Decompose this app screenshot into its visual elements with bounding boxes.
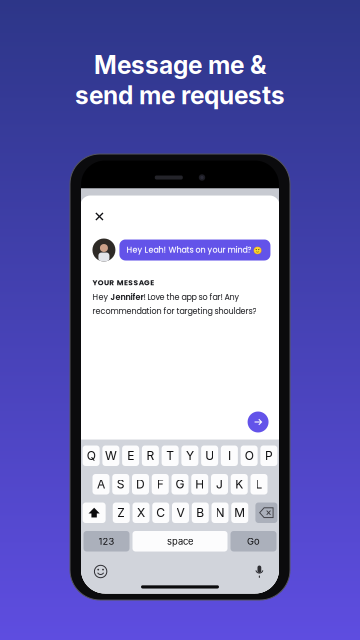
button[interactable]: E bbox=[122, 445, 139, 466]
staticText: U bbox=[205, 448, 214, 463]
staticText: send me requests bbox=[75, 80, 285, 110]
staticText: Go bbox=[247, 536, 260, 547]
staticText: 🙂 bbox=[253, 246, 262, 254]
button[interactable]: T bbox=[162, 445, 179, 466]
button[interactable]: Shift bbox=[83, 502, 106, 523]
button[interactable]: S bbox=[112, 474, 129, 494]
button[interactable]: F bbox=[152, 474, 169, 494]
button[interactable]: X bbox=[132, 502, 149, 523]
staticText: Hey Leah! Whats on your mind? bbox=[126, 244, 251, 256]
button[interactable]: space bbox=[132, 531, 227, 551]
button[interactable]: C bbox=[152, 502, 169, 523]
staticText: Y bbox=[186, 448, 194, 463]
button[interactable]: W bbox=[102, 445, 119, 466]
button[interactable]: P bbox=[260, 445, 277, 466]
button[interactable]: V bbox=[172, 502, 189, 523]
button[interactable]: Send message bbox=[248, 411, 269, 432]
button[interactable]: H bbox=[191, 474, 208, 494]
staticText: R bbox=[146, 448, 154, 463]
button[interactable]: U bbox=[201, 445, 218, 466]
button[interactable]: L bbox=[250, 474, 267, 494]
staticText: J bbox=[216, 477, 223, 491]
button[interactable]: D bbox=[132, 474, 149, 494]
staticText: Q bbox=[87, 448, 96, 463]
button[interactable]: Z bbox=[113, 502, 130, 523]
button[interactable]: O bbox=[241, 445, 258, 466]
staticText: A bbox=[97, 477, 105, 491]
staticText: space bbox=[167, 536, 193, 547]
staticText: S bbox=[117, 477, 125, 491]
button[interactable]: J bbox=[211, 474, 228, 494]
staticText: O bbox=[245, 448, 254, 463]
button[interactable]: Dictation bbox=[252, 564, 266, 578]
staticText: YOUR MESSAGE bbox=[92, 277, 154, 288]
staticText: B bbox=[196, 505, 204, 520]
staticText: H bbox=[195, 477, 204, 491]
staticText: X bbox=[137, 505, 145, 520]
button[interactable]: Close bbox=[88, 205, 110, 227]
button[interactable]: A bbox=[92, 474, 109, 494]
staticText: Hey Jennifer! Love the app so far! Any r… bbox=[92, 292, 256, 317]
button[interactable]: Y bbox=[181, 445, 198, 466]
button[interactable]: Emoji keyboard bbox=[94, 564, 108, 578]
staticText: T bbox=[166, 448, 174, 463]
staticText: I bbox=[228, 448, 231, 463]
button[interactable]: N bbox=[211, 502, 228, 523]
button[interactable]: 123 bbox=[83, 531, 129, 551]
staticText: C bbox=[156, 505, 165, 520]
button[interactable]: I bbox=[221, 445, 238, 466]
staticText: P bbox=[265, 448, 273, 463]
staticText: M bbox=[234, 505, 245, 520]
staticText: N bbox=[215, 505, 224, 520]
button[interactable]: M bbox=[231, 502, 248, 523]
button[interactable]: Q bbox=[83, 445, 100, 466]
button[interactable]: K bbox=[231, 474, 248, 494]
button[interactable]: Delete bbox=[255, 502, 277, 523]
staticText: D bbox=[136, 477, 145, 491]
staticText: E bbox=[127, 448, 134, 463]
button[interactable]: Go bbox=[230, 531, 276, 551]
staticText: W bbox=[105, 448, 117, 463]
staticText: L bbox=[255, 477, 262, 491]
button[interactable]: R bbox=[142, 445, 159, 466]
staticText: G bbox=[175, 477, 184, 491]
staticText: K bbox=[235, 477, 243, 491]
staticText: Z bbox=[117, 505, 125, 520]
staticText: 123 bbox=[98, 536, 114, 547]
staticText: F bbox=[157, 477, 164, 491]
button[interactable]: G bbox=[171, 474, 188, 494]
staticText: Message me & bbox=[94, 50, 266, 80]
button[interactable]: B bbox=[192, 502, 209, 523]
staticText: V bbox=[176, 505, 184, 520]
